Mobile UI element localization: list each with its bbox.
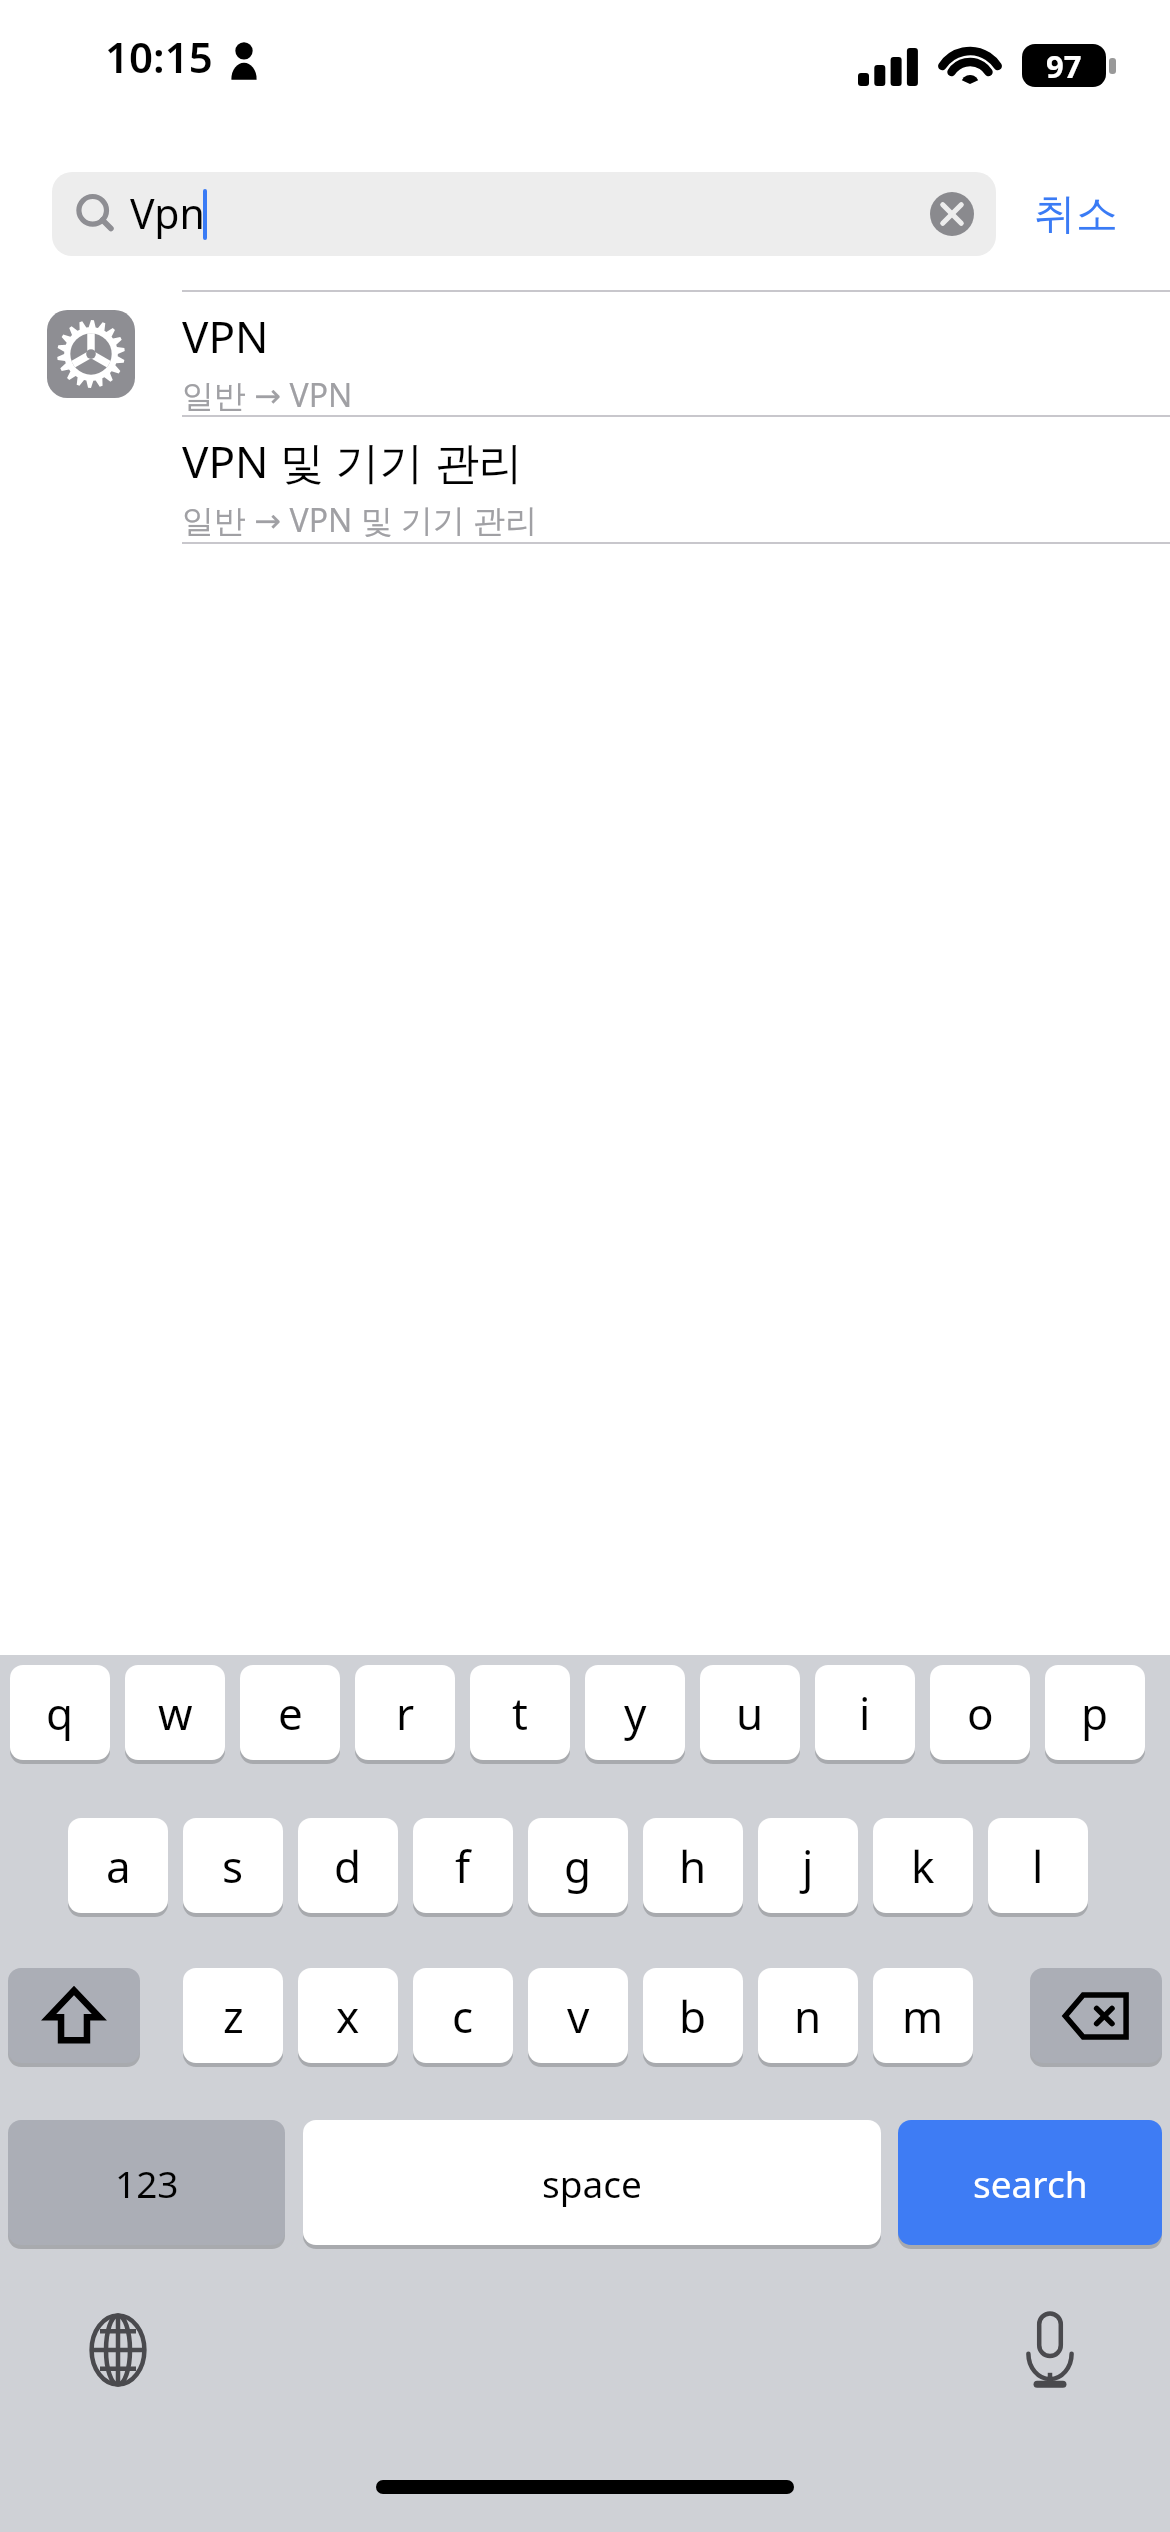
staticText: 10:15 (105, 28, 213, 85)
staticText: h (679, 1836, 707, 1896)
button[interactable]: x (298, 1968, 398, 2063)
staticText: q (46, 1683, 74, 1743)
staticText: n (794, 1986, 822, 2046)
button[interactable]: VPN 및 기기 관리 (0, 417, 1170, 542)
button[interactable]: Switch keyboard language (78, 2310, 158, 2390)
button[interactable]: Clear search (928, 190, 976, 238)
staticText: x (336, 1986, 360, 2046)
staticText: v (567, 1986, 590, 2046)
staticText: f (455, 1836, 471, 1896)
button[interactable]: a (68, 1818, 168, 1913)
staticText: VPN (182, 306, 269, 366)
staticText: u (736, 1683, 764, 1743)
button[interactable]: Backspace (1030, 1968, 1162, 2063)
staticText: l (1032, 1836, 1044, 1896)
staticText: c (452, 1986, 474, 2046)
staticText: space (542, 2158, 642, 2208)
button[interactable]: w (125, 1665, 225, 1760)
staticText: search (973, 2158, 1088, 2208)
button[interactable]: d (298, 1818, 398, 1913)
staticText: b (679, 1986, 707, 2046)
button[interactable]: m (873, 1968, 973, 2063)
button[interactable]: t (470, 1665, 570, 1760)
staticText: k (911, 1836, 935, 1896)
staticText: a (106, 1836, 131, 1896)
button[interactable]: j (758, 1818, 858, 1913)
button[interactable]: Vpn (52, 172, 996, 256)
staticText: p (1081, 1683, 1109, 1743)
staticText: 일반 → VPN 및 기기 관리 (182, 498, 538, 542)
button[interactable]: g (528, 1818, 628, 1913)
staticText: o (967, 1683, 994, 1743)
button[interactable]: Shift (8, 1968, 140, 2063)
button[interactable]: h (643, 1818, 743, 1913)
staticText: z (223, 1986, 244, 2046)
button[interactable]: i (815, 1665, 915, 1760)
button[interactable]: o (930, 1665, 1030, 1760)
button[interactable]: k (873, 1818, 973, 1913)
staticText: Vpn (130, 185, 205, 241)
button[interactable]: 취소 (1014, 176, 1138, 252)
button[interactable]: s (183, 1818, 283, 1913)
button[interactable]: v (528, 1968, 628, 2063)
button[interactable]: c (413, 1968, 513, 2063)
button[interactable]: r (355, 1665, 455, 1760)
staticText: m (902, 1986, 944, 2046)
staticText: e (278, 1683, 303, 1743)
button[interactable]: f (413, 1818, 513, 1913)
button[interactable]: p (1045, 1665, 1145, 1760)
staticText: g (564, 1836, 592, 1896)
staticText: y (624, 1683, 647, 1743)
button[interactable]: space (303, 2120, 881, 2245)
button[interactable]: l (988, 1818, 1088, 1913)
staticText: j (802, 1836, 814, 1896)
button[interactable]: search (898, 2120, 1162, 2245)
button[interactable]: y (585, 1665, 685, 1760)
button[interactable]: q (10, 1665, 110, 1760)
button[interactable]: n (758, 1968, 858, 2063)
staticText: 97 (1046, 45, 1082, 87)
staticText: i (859, 1683, 871, 1743)
staticText: t (512, 1683, 528, 1743)
staticText: 취소 (1034, 188, 1118, 241)
button[interactable]: z (183, 1968, 283, 2063)
button[interactable]: 123 (8, 2120, 285, 2245)
staticText: d (334, 1836, 362, 1896)
other: Settings (47, 310, 135, 398)
staticText: w (158, 1683, 193, 1743)
button[interactable]: e (240, 1665, 340, 1760)
button[interactable]: b (643, 1968, 743, 2063)
staticText: 일반 → VPN (182, 373, 353, 417)
staticText: 123 (115, 2158, 179, 2208)
staticText: r (396, 1683, 415, 1743)
button[interactable]: Settings (0, 292, 1170, 415)
staticText: VPN 및 기기 관리 (182, 431, 523, 491)
staticText: s (222, 1836, 244, 1896)
button[interactable]: Dictation (1010, 2310, 1090, 2390)
button[interactable]: u (700, 1665, 800, 1760)
